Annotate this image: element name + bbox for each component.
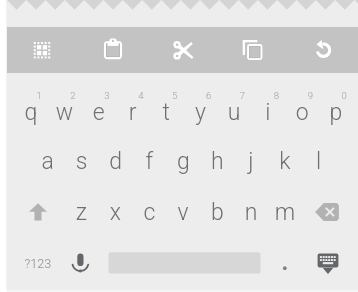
button[interactable]: Backspace [302, 189, 353, 239]
button[interactable]: Paste [77, 27, 147, 73]
button[interactable]: c [133, 189, 167, 239]
button[interactable]: Select all [7, 27, 77, 73]
button[interactable]: p [319, 88, 353, 138]
button[interactable]: o [285, 88, 319, 138]
button[interactable]: g [167, 138, 201, 188]
button[interactable]: Shift [14, 189, 65, 239]
button[interactable]: Space [99, 239, 269, 289]
button[interactable]: Voice input [65, 239, 99, 289]
button[interactable]: Hide keyboard [302, 239, 353, 289]
button[interactable]: z [65, 189, 99, 239]
button[interactable]: s [65, 138, 99, 188]
button[interactable]: a [31, 138, 65, 188]
button[interactable]: f [133, 138, 167, 188]
button[interactable]: j [234, 138, 268, 188]
button[interactable]: Undo [288, 27, 358, 73]
button[interactable]: h [200, 138, 234, 188]
button[interactable]: Copy [218, 27, 288, 73]
button[interactable]: e [82, 88, 116, 138]
button[interactable]: m [268, 189, 302, 239]
button[interactable]: x [99, 189, 133, 239]
button[interactable]: k [268, 138, 302, 188]
button[interactable]: Period [268, 239, 302, 289]
button[interactable]: u [217, 88, 251, 138]
button[interactable]: Symbols [14, 239, 65, 289]
button[interactable]: r [116, 88, 150, 138]
button[interactable]: b [200, 189, 234, 239]
button[interactable]: i [251, 88, 285, 138]
button[interactable]: w [48, 88, 82, 138]
button[interactable]: n [234, 189, 268, 239]
button[interactable]: d [99, 138, 133, 188]
button[interactable]: Cut [147, 27, 217, 73]
button[interactable]: q [14, 88, 48, 138]
button[interactable]: y [184, 88, 218, 138]
button[interactable]: v [167, 189, 201, 239]
button[interactable]: l [302, 138, 336, 188]
button[interactable]: t [150, 88, 184, 138]
